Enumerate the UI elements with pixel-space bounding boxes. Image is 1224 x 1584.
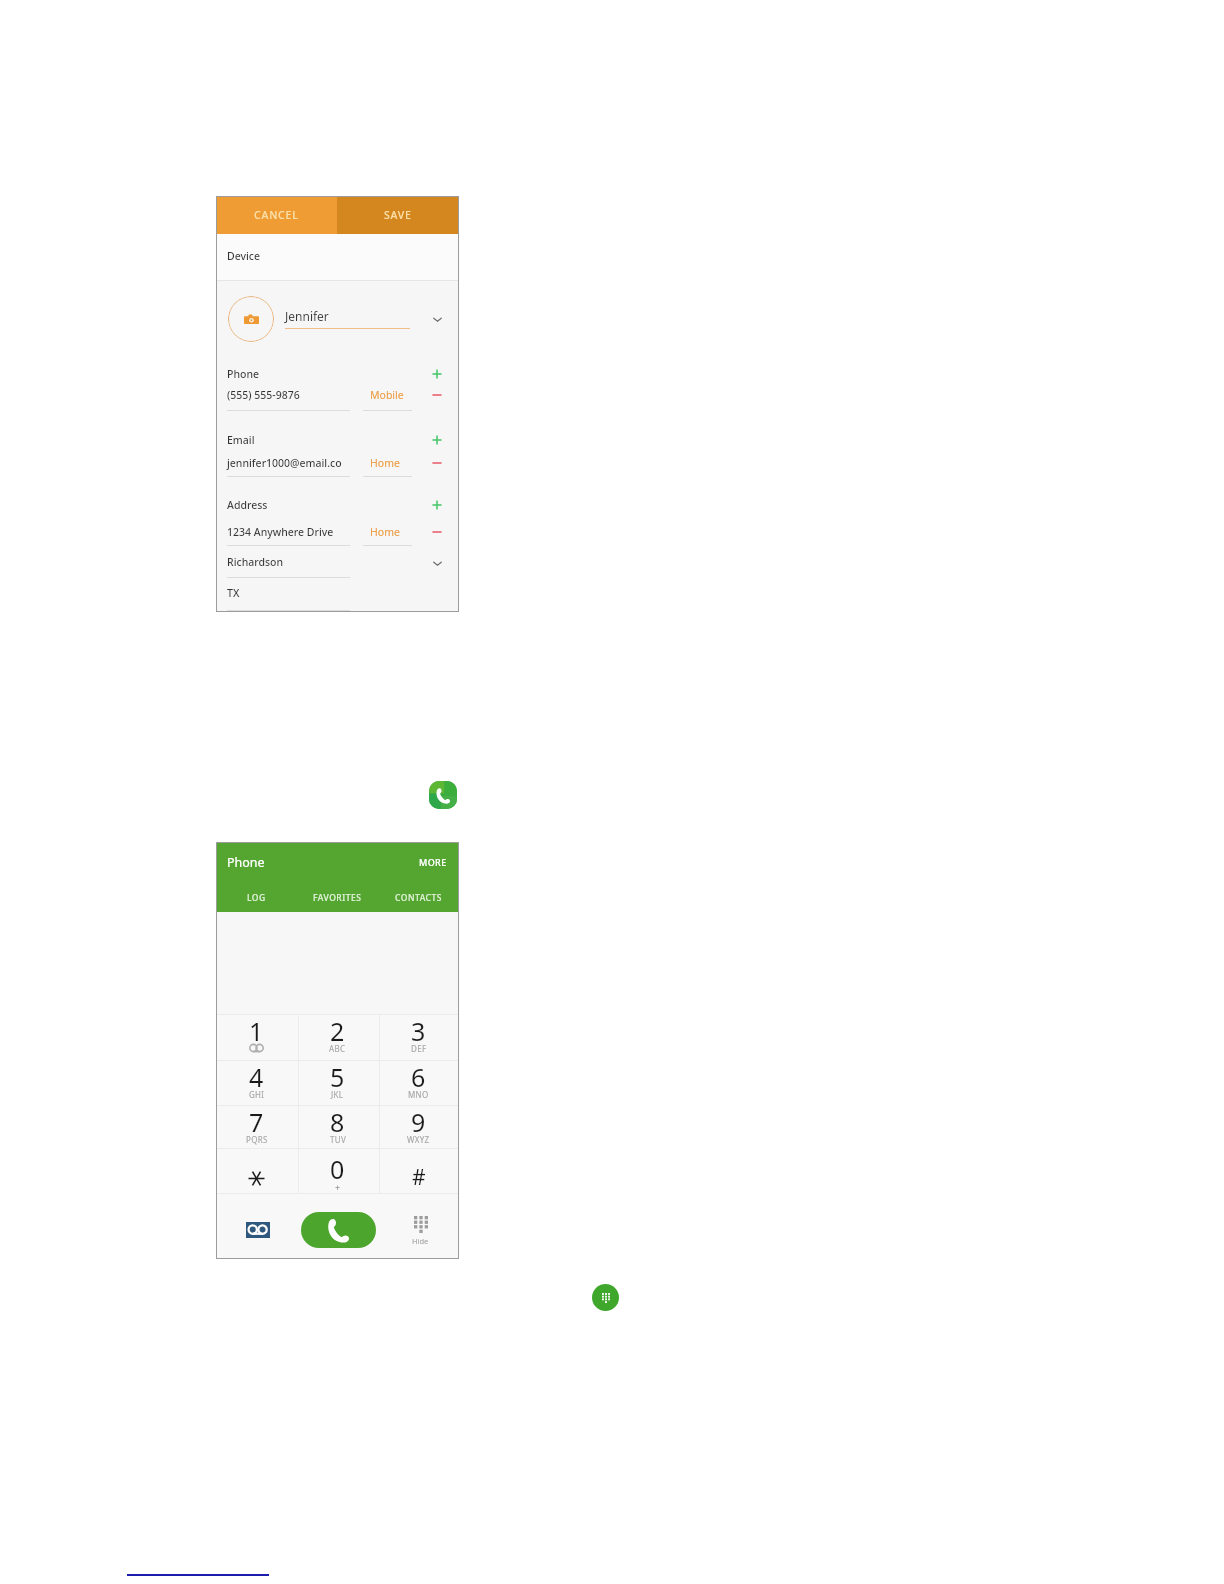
staticText: CONTACTS <box>395 892 442 904</box>
staticText: 0 <box>330 1152 345 1186</box>
staticText: Home <box>370 525 400 539</box>
button[interactable]: 0 <box>297 1148 378 1192</box>
button[interactable]: 1 <box>216 1014 297 1060</box>
button[interactable]: Expand address <box>429 555 446 572</box>
staticText: Richardson <box>227 555 284 569</box>
staticText: DEF <box>411 1043 427 1054</box>
button[interactable]: Phone app <box>429 781 457 809</box>
staticText: MNO <box>408 1089 429 1100</box>
button[interactable]: 7 <box>216 1105 297 1149</box>
button[interactable]: Add Email <box>429 432 445 448</box>
staticText: JKL <box>331 1089 344 1100</box>
button[interactable]: 3 <box>378 1014 459 1060</box>
button[interactable]: 6 <box>378 1060 459 1105</box>
button[interactable]: LOG <box>216 887 297 909</box>
button[interactable]: Remove email <box>429 455 445 471</box>
staticText: Mobile <box>370 388 404 402</box>
button[interactable]: SAVE <box>337 196 459 234</box>
button[interactable]: Add Phone <box>429 366 445 382</box>
staticText: Home <box>370 456 400 470</box>
button[interactable]: 4 <box>216 1060 297 1105</box>
staticText: PQRS <box>246 1134 268 1145</box>
staticText: 5 <box>330 1060 345 1094</box>
staticText: SAVE <box>384 208 412 222</box>
staticText: Hide <box>412 1236 429 1246</box>
button[interactable]: 2 <box>297 1014 378 1060</box>
button[interactable]: 5 <box>297 1060 378 1105</box>
staticText: CANCEL <box>254 208 299 222</box>
staticText: + <box>335 1181 341 1193</box>
staticText: 4 <box>249 1060 264 1094</box>
staticText: 1234 Anywhere Drive <box>227 525 351 539</box>
staticText: 6 <box>411 1060 426 1094</box>
button[interactable]: CONTACTS <box>378 887 459 909</box>
button[interactable]: Keypad <box>592 1284 619 1311</box>
staticText: TUV <box>330 1134 346 1145</box>
button[interactable]: Device <box>216 234 459 280</box>
button[interactable]: Hide keypad <box>396 1199 445 1255</box>
staticText: Address <box>227 498 268 512</box>
button[interactable]: Add photo <box>228 296 274 342</box>
staticText: jennifer1000@email.co <box>227 456 351 470</box>
staticText: Device <box>227 249 261 263</box>
staticText: (555) 555-9876 <box>227 388 351 402</box>
button[interactable]: # <box>378 1148 459 1192</box>
button[interactable]: Voicemail <box>233 1199 283 1255</box>
button[interactable]: Remove address <box>429 524 445 540</box>
staticText: TX <box>227 586 240 600</box>
staticText: FAVORITES <box>313 892 362 904</box>
staticText: Phone <box>227 854 265 871</box>
staticText: 3 <box>411 1014 426 1048</box>
button[interactable]: Expand name <box>429 311 446 328</box>
staticText: LOG <box>247 892 266 904</box>
button[interactable]: MORE <box>406 850 453 874</box>
button[interactable]: Add Address <box>429 497 445 513</box>
button[interactable]: 8 <box>297 1105 378 1149</box>
staticText: WXYZ <box>407 1134 430 1145</box>
button[interactable]: FAVORITES <box>297 887 378 909</box>
staticText: MORE <box>419 856 447 868</box>
button[interactable]: Call <box>301 1212 376 1248</box>
button[interactable]: CANCEL <box>216 196 337 234</box>
staticText: 8 <box>330 1105 345 1139</box>
button[interactable]: 9 <box>378 1105 459 1149</box>
staticText: 9 <box>411 1105 426 1139</box>
button[interactable] <box>216 1148 297 1192</box>
staticText: GHI <box>249 1089 265 1100</box>
staticText: Jennifer <box>285 308 329 324</box>
staticText: 1 <box>249 1014 264 1048</box>
button[interactable]: Remove phone <box>429 387 445 403</box>
staticText: 7 <box>249 1105 264 1139</box>
staticText: 2 <box>330 1014 345 1048</box>
staticText: Phone <box>227 367 260 381</box>
staticText: # <box>412 1163 426 1192</box>
staticText: Email <box>227 433 255 447</box>
staticText: ABC <box>329 1043 346 1054</box>
